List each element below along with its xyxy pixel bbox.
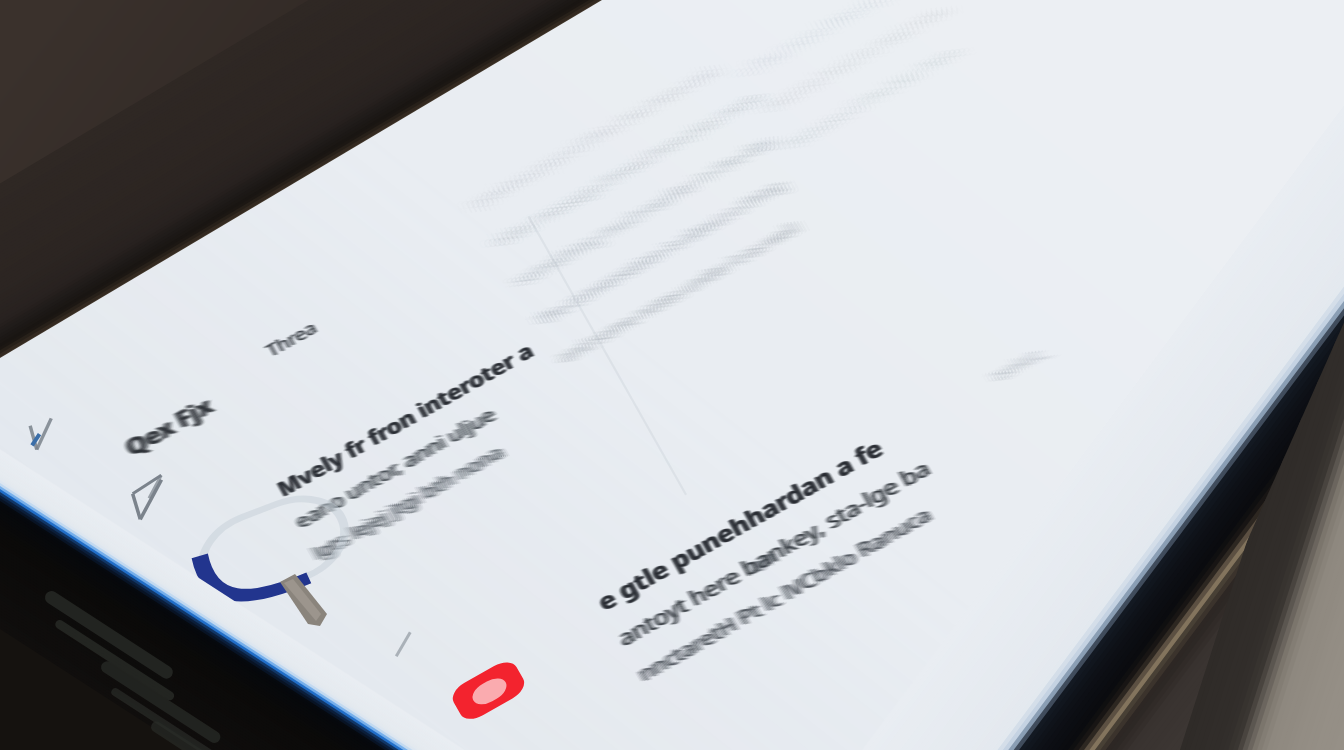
button[interactable]: Toggle setting <box>190 496 358 616</box>
button[interactable]: Open notification <box>444 654 536 732</box>
button[interactable]: Qex Fjx conversation header <box>110 402 260 458</box>
button[interactable]: Threads <box>252 318 362 364</box>
button[interactable]: Threads <box>0 0 1344 750</box>
button[interactable]: Earlier messages <box>450 120 1010 380</box>
button[interactable]: Message reply thread <box>560 500 980 730</box>
button[interactable]: Reply <box>24 410 76 462</box>
button[interactable]: Compose message <box>122 474 184 532</box>
button[interactable]: Message from inbox <box>250 400 610 590</box>
